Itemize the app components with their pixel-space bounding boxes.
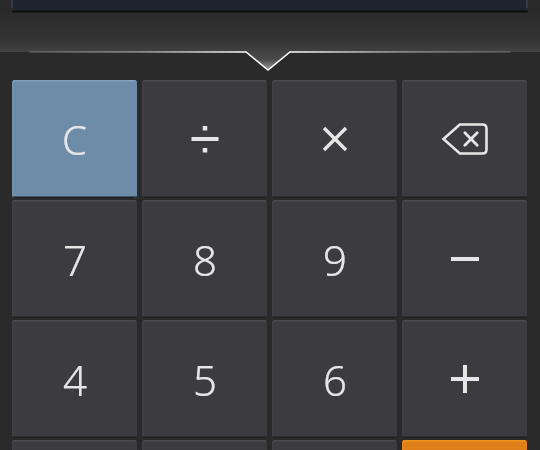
staticText: 9 [323, 231, 347, 288]
button[interactable]: Key [12, 320, 137, 438]
button[interactable]: Key [272, 320, 397, 438]
other: Backspace [441, 122, 489, 156]
button[interactable]: Key [402, 80, 527, 198]
button[interactable]: Key [142, 440, 267, 450]
button[interactable]: Key [142, 80, 267, 198]
staticText: 5 [193, 351, 217, 408]
button[interactable]: Key [272, 440, 397, 450]
button[interactable]: Key [12, 440, 137, 450]
button[interactable]: Key [272, 80, 397, 198]
button[interactable]: Key [402, 320, 527, 438]
staticText: 7 [63, 231, 87, 288]
button[interactable]: Key [272, 200, 397, 318]
staticText: 4 [63, 351, 87, 408]
button[interactable] [12, 0, 528, 11]
staticText: 8 [193, 231, 217, 288]
button[interactable]: Key [12, 200, 137, 318]
button[interactable]: Key [402, 200, 527, 318]
button[interactable]: Key [12, 80, 137, 198]
button[interactable]: Equals [402, 440, 527, 450]
button[interactable]: Key [142, 200, 267, 318]
staticText: 6 [323, 351, 347, 408]
button[interactable]: Key [142, 320, 267, 438]
staticText: C [62, 112, 87, 166]
